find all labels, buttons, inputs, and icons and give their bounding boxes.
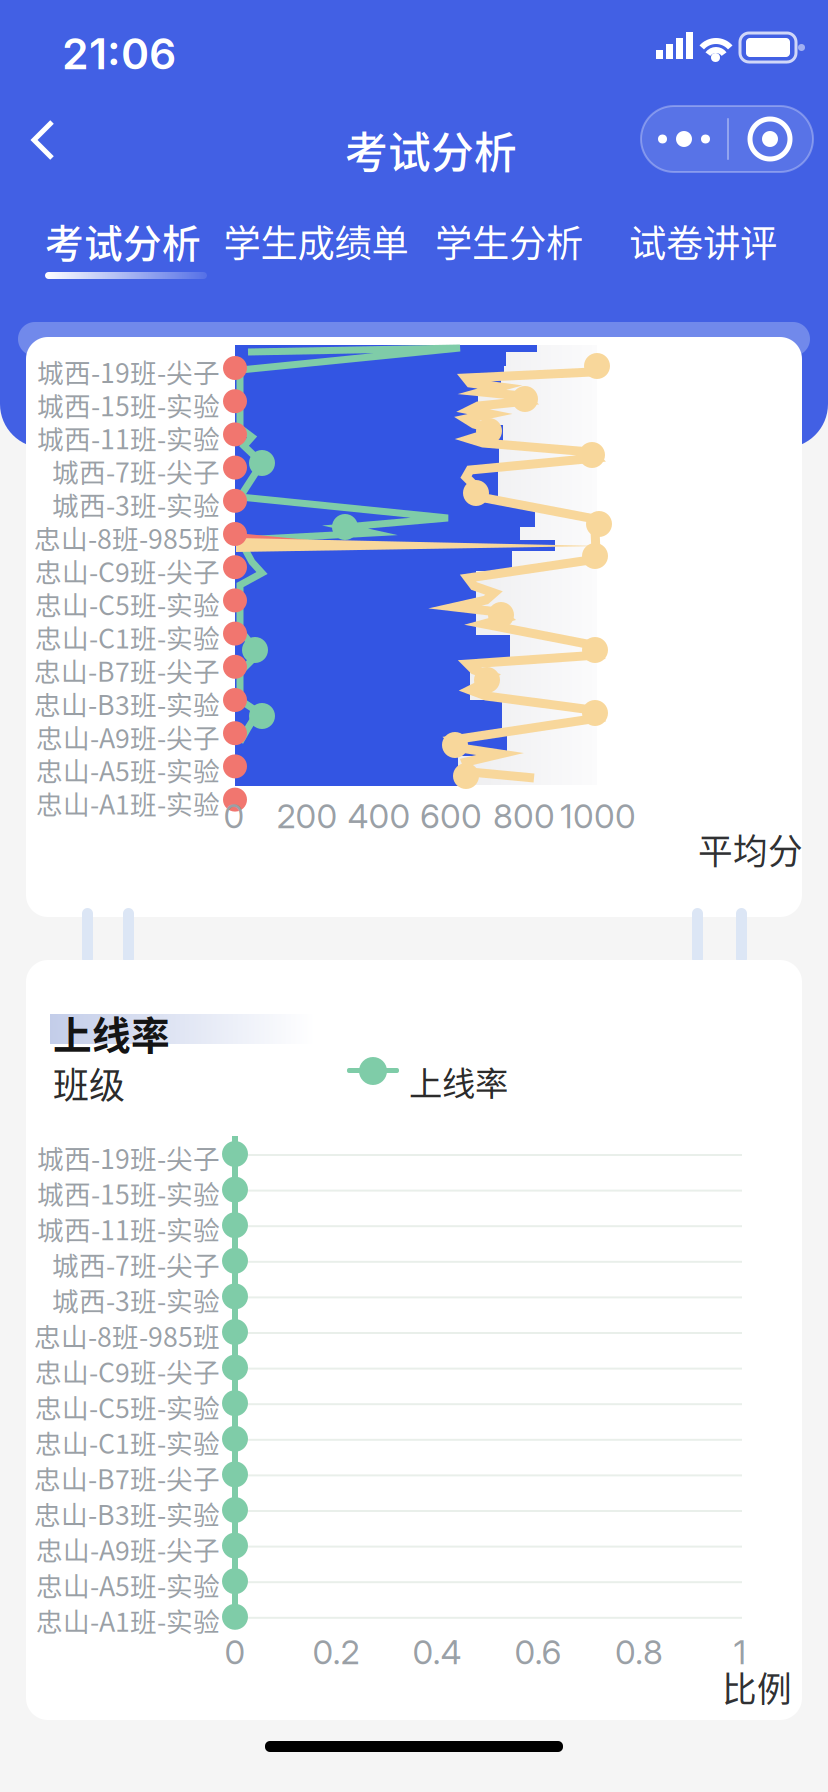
staticText: 0.2 bbox=[312, 1632, 359, 1672]
staticText: 忠山-A5班-实验 bbox=[36, 1565, 220, 1604]
staticText: 城西-3班-实验 bbox=[52, 485, 220, 523]
staticText: 1000 bbox=[560, 796, 636, 836]
staticText: 忠山-C1班-实验 bbox=[35, 1423, 220, 1461]
staticText: 忠山-A1班-实验 bbox=[36, 784, 220, 822]
staticText: 忠山-C9班-尖子 bbox=[35, 551, 220, 590]
staticText: 400 bbox=[347, 796, 410, 836]
staticText: 学生分析 bbox=[435, 214, 583, 268]
staticText: 上线率 bbox=[409, 1057, 508, 1105]
button[interactable]: 学生成绩单 bbox=[221, 198, 411, 284]
staticText: 试卷讲评 bbox=[629, 214, 777, 268]
staticText: 忠山-8班-985班 bbox=[34, 518, 220, 557]
staticText: 忠山-A1班-实验 bbox=[36, 1601, 220, 1639]
button[interactable]: More bbox=[641, 106, 727, 172]
staticText: 城西-19班-尖子 bbox=[37, 352, 220, 391]
staticText: 比例 bbox=[722, 1662, 792, 1712]
button[interactable]: 学生分析 bbox=[414, 198, 604, 284]
staticText: 城西-7班-尖子 bbox=[52, 1245, 220, 1283]
staticText: 城西-15班-实验 bbox=[37, 1174, 220, 1212]
staticText: 考试分析 bbox=[45, 213, 201, 269]
staticText: 0.6 bbox=[514, 1632, 561, 1672]
staticText: 忠山-A5班-实验 bbox=[36, 750, 220, 789]
staticText: 忠山-C1班-实验 bbox=[35, 618, 220, 656]
staticText: 考试分析 bbox=[345, 119, 517, 181]
staticText: 城西-11班-实验 bbox=[37, 1209, 220, 1248]
staticText: 忠山-8班-985班 bbox=[34, 1316, 220, 1355]
staticText: 忠山-A9班-尖子 bbox=[36, 717, 220, 756]
button[interactable]: 试卷讲评 bbox=[608, 198, 798, 284]
staticText: 城西-7班-尖子 bbox=[52, 452, 220, 490]
staticText: 城西-3班-实验 bbox=[52, 1280, 220, 1319]
button[interactable]: Close mini program bbox=[727, 106, 813, 172]
staticText: 忠山-B3班-实验 bbox=[34, 684, 220, 723]
staticText: 200 bbox=[276, 796, 337, 836]
staticText: 忠山-B7班-尖子 bbox=[34, 651, 220, 689]
staticText: 忠山-C5班-实验 bbox=[35, 1387, 220, 1426]
staticText: 0 bbox=[223, 796, 244, 836]
staticText: 0.8 bbox=[615, 1632, 663, 1672]
button[interactable]: Back bbox=[0, 0, 96, 200]
staticText: 0 bbox=[224, 1632, 245, 1672]
staticText: 忠山-B7班-尖子 bbox=[34, 1458, 220, 1497]
staticText: 忠山-C5班-实验 bbox=[35, 584, 220, 623]
staticText: 上线率 bbox=[53, 1005, 170, 1061]
staticText: 800 bbox=[493, 796, 555, 836]
staticText: 0.4 bbox=[412, 1632, 461, 1672]
staticText: 600 bbox=[420, 796, 482, 836]
staticText: 忠山-C9班-尖子 bbox=[35, 1352, 220, 1390]
staticText: 忠山-B3班-实验 bbox=[34, 1494, 220, 1533]
staticText: 班级 bbox=[53, 1057, 125, 1109]
staticText: 忠山-A9班-尖子 bbox=[36, 1530, 220, 1568]
staticText: 1 bbox=[733, 1632, 746, 1672]
staticText: 城西-11班-实验 bbox=[37, 418, 220, 457]
staticText: 城西-15班-实验 bbox=[37, 385, 220, 424]
staticText: 平均分 bbox=[698, 824, 803, 874]
staticText: 学生成绩单 bbox=[223, 214, 408, 268]
staticText: 21:06 bbox=[62, 28, 176, 80]
staticText: 城西-19班-尖子 bbox=[37, 1138, 220, 1177]
button[interactable]: 考试分析 bbox=[28, 198, 218, 284]
